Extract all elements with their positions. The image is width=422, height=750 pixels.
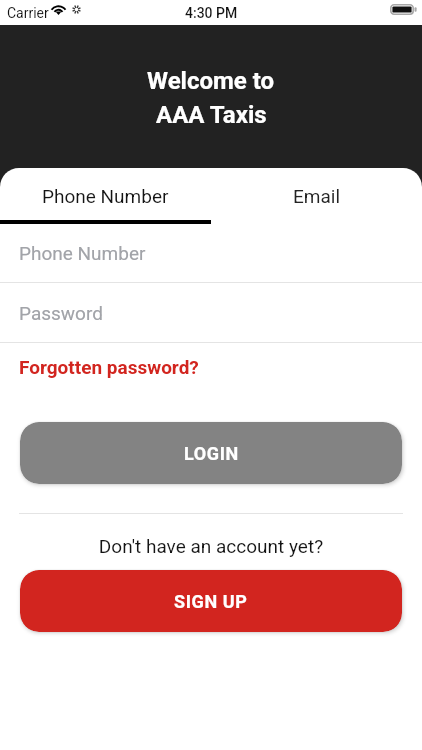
- staticText: Don't have an account yet?: [0, 535, 422, 557]
- other: Battery full: [390, 4, 417, 16]
- staticText: Welcome to: [147, 67, 275, 95]
- other: Wi-Fi signal: [51, 5, 66, 15]
- staticText: LOGIN: [184, 443, 239, 464]
- staticText: Phone Number: [42, 185, 169, 207]
- button[interactable]: Email: [211, 172, 422, 220]
- staticText: Email: [293, 185, 341, 207]
- button[interactable]: LOGIN: [20, 422, 402, 484]
- staticText: 4:30 PM: [185, 5, 238, 21]
- staticText: Password: [19, 302, 103, 324]
- staticText: SIGN UP: [174, 591, 248, 612]
- staticText: Forgotten password?: [19, 356, 199, 378]
- button[interactable]: Phone Number: [0, 172, 211, 220]
- staticText: Phone Number: [19, 242, 146, 264]
- button[interactable]: Phone Number: [0, 224, 422, 283]
- button[interactable]: SIGN UP: [20, 570, 402, 632]
- button[interactable]: Password: [0, 283, 422, 343]
- staticText: Carrier: [7, 5, 49, 21]
- button[interactable]: Forgotten password?: [19, 355, 199, 379]
- other: Location services: [72, 5, 81, 14]
- staticText: AAA Taxis: [156, 101, 267, 129]
